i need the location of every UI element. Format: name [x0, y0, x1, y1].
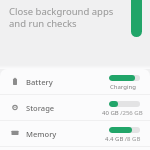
staticText: Memory — [26, 129, 57, 139]
staticText: 40 GB /256 GB — [102, 109, 143, 117]
staticText: Close background apps and run checks — [9, 5, 114, 30]
button[interactable]: Storage — [0, 95, 150, 120]
button[interactable]: Memory — [0, 121, 150, 146]
button[interactable]: Battery — [0, 69, 150, 94]
staticText: Charging — [110, 83, 136, 91]
staticText: Battery — [26, 77, 53, 87]
staticText: 4.4 GB /8 GB — [105, 135, 141, 143]
staticText: Storage — [26, 103, 55, 113]
